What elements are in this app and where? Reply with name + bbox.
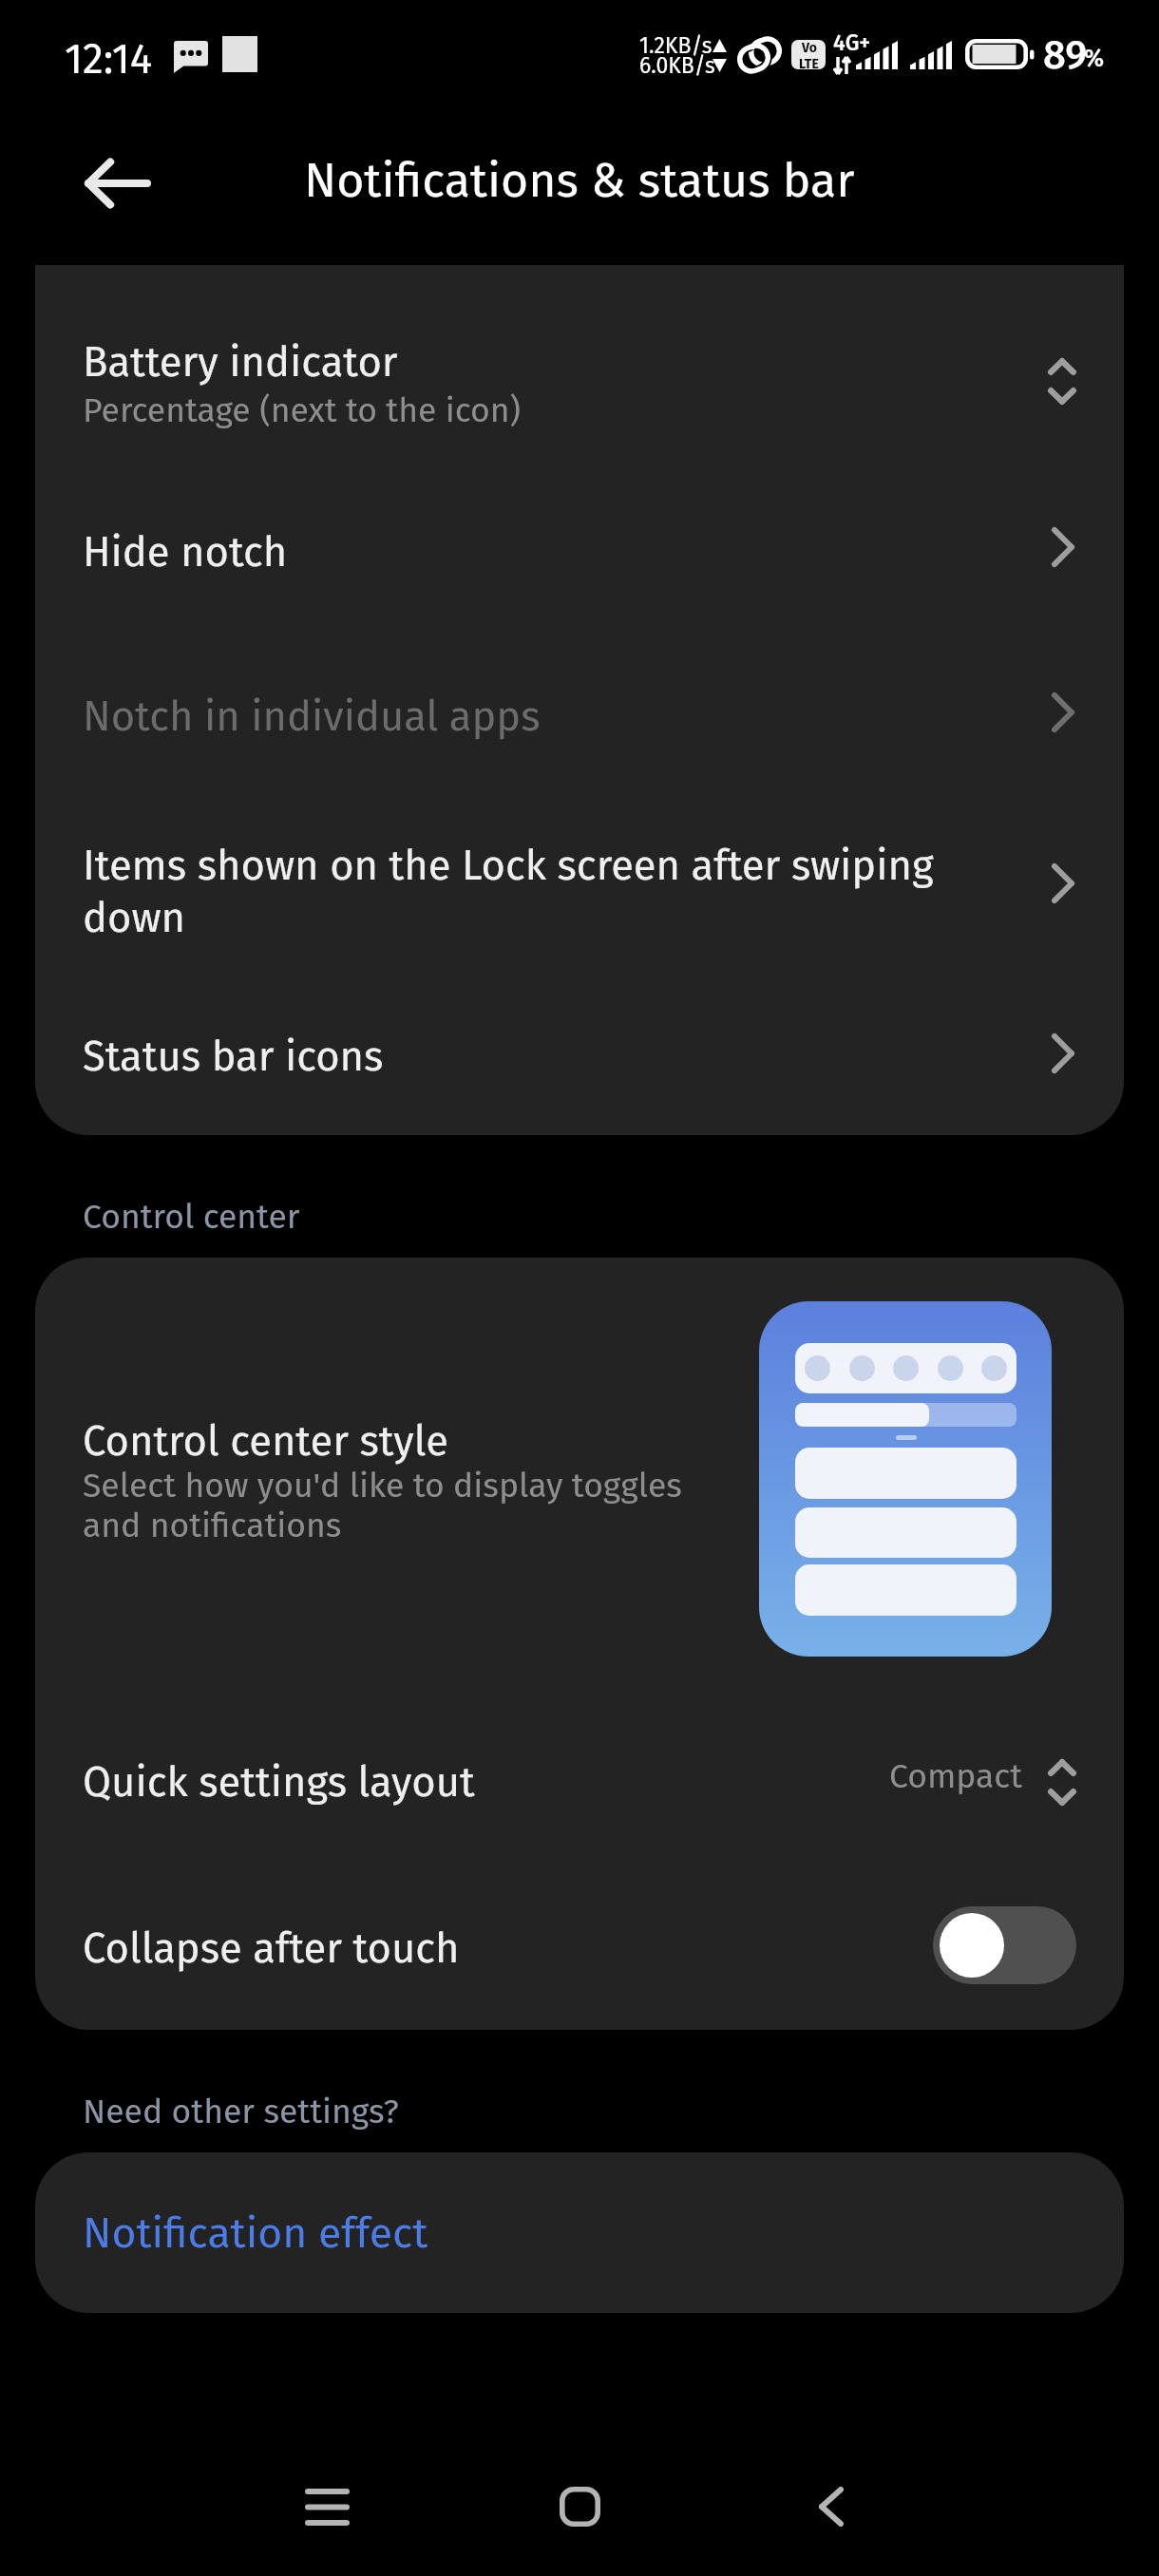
button[interactable]: Control center style (35, 1258, 1124, 1692)
staticText: Notch in individual apps (83, 691, 541, 741)
staticText: Vo (802, 40, 817, 56)
button[interactable]: Notch in individual apps (35, 631, 1124, 795)
staticText: Collapse after touch (83, 1923, 460, 1973)
staticText: Percentage (next to the icon) (83, 390, 522, 431)
button[interactable]: Quick settings layout (35, 1692, 1124, 1861)
staticText: 12:14 (65, 34, 153, 85)
staticText: Quick settings layout (83, 1757, 475, 1807)
button[interactable]: Recent apps (281, 2461, 372, 2552)
staticText: Control center (83, 1197, 300, 1238)
staticText: Select how you'd like to display toggles… (83, 1466, 682, 1545)
staticText: Need other settings? (83, 2092, 399, 2132)
button[interactable]: Back (786, 2461, 877, 2552)
staticText: 4G+ (833, 29, 871, 56)
staticText: LTE (799, 56, 819, 69)
button[interactable]: Hide notch (35, 466, 1124, 631)
button[interactable]: Status bar icons (35, 972, 1124, 1135)
button[interactable]: Back (65, 131, 169, 236)
button[interactable]: Collapse after touch (933, 1906, 1076, 1984)
staticText: Hide notch (83, 527, 288, 577)
staticText: Items shown on the Lock screen after swi… (83, 841, 1008, 942)
staticText: Battery indicator (83, 337, 398, 387)
button[interactable]: Collapse after touch (35, 1861, 1124, 2030)
button[interactable]: Items shown on the Lock screen after swi… (35, 795, 1124, 972)
button[interactable]: Battery indicator (35, 265, 1124, 466)
staticText: 6.0KB/s (639, 52, 715, 79)
staticText: Status bar icons (83, 1032, 384, 1081)
staticText: % (1084, 45, 1105, 73)
button[interactable]: Notification effect (35, 2152, 1124, 2313)
staticText: Control center style (83, 1416, 448, 1466)
staticText: Compact (889, 1756, 1023, 1797)
staticText: 89 (1043, 31, 1087, 79)
button[interactable]: Home (534, 2461, 625, 2552)
staticText: Notifications & status bar (304, 152, 855, 209)
staticText: 1.2KB/s (639, 32, 712, 59)
staticText: Notification effect (83, 2207, 428, 2258)
